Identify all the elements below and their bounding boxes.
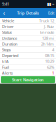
button[interactable]: Vehicle [0,18,56,23]
button[interactable]: Fuel [0,64,56,70]
button[interactable]: Status [0,30,56,35]
staticText: Vehicle [2,18,14,23]
staticText: Driver [2,24,14,29]
button[interactable]: Alerts [0,70,56,76]
staticText: ETA [2,59,9,64]
staticText: Trip Details [17,10,39,16]
staticText: 10:29 [45,59,54,64]
staticText: Stops [2,47,11,52]
staticText: 62% [47,64,54,70]
staticText: Truck 12 [39,18,54,23]
staticText: Fuel [2,64,9,70]
staticText: 4 [52,47,54,52]
staticText: Distance [2,35,17,41]
button[interactable]: ETA [0,59,56,64]
button[interactable]: Start Navigation [1,76,55,83]
staticText: En route [40,30,54,35]
button[interactable]: Driver [0,24,56,29]
staticText: Edit [48,10,54,16]
staticText: J. Ruiz [44,24,54,29]
staticText: Status [2,30,12,35]
button[interactable]: Back [1,8,7,18]
staticText: Departed [2,53,18,58]
button[interactable]: Duration [0,41,56,47]
button[interactable]: Stops [0,47,56,52]
staticText: ‹ [3,9,5,17]
staticText: 2h 14m [41,41,54,46]
staticText: 1 [52,70,54,75]
button[interactable]: Departed [0,53,56,58]
staticText: Duration [2,41,17,46]
staticText: 9:41 [2,1,9,7]
button[interactable]: Distance [0,35,56,41]
staticText: 08:15 [45,53,54,58]
staticText: ▮▮ ⌁ [47,2,54,6]
staticText: 128 mi [42,35,54,41]
button[interactable]: Edit [47,8,55,18]
staticText: Start Navigation [12,77,44,82]
staticText: Alerts [2,70,13,75]
